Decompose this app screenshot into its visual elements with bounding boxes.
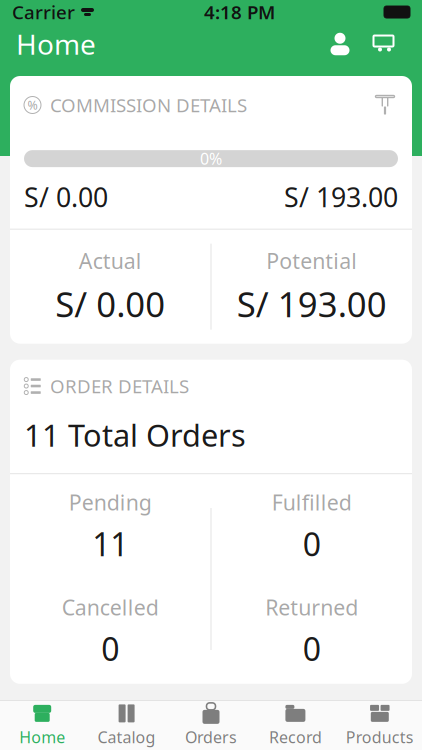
button[interactable]: Products xyxy=(338,701,422,750)
staticText: Home xyxy=(19,726,65,748)
staticText: Orders xyxy=(185,726,237,748)
staticText: Products xyxy=(346,726,414,748)
staticText: Fulfilled xyxy=(272,488,352,516)
staticText: Home xyxy=(16,25,96,63)
button[interactable]: Orders xyxy=(169,701,253,750)
staticText: % xyxy=(27,97,37,113)
button[interactable]: Record xyxy=(253,701,338,750)
staticText: 0 xyxy=(303,522,321,565)
button[interactable]: Catalog xyxy=(84,701,169,750)
staticText: 0% xyxy=(200,148,222,169)
staticText: Catalog xyxy=(98,726,156,748)
staticText: 0 xyxy=(101,627,119,670)
staticText: Cancelled xyxy=(62,593,159,621)
button[interactable]: Filter xyxy=(368,88,402,122)
staticText: S/ 193.00 xyxy=(237,281,387,327)
staticText: Potential xyxy=(266,246,357,275)
staticText: 11 Total Orders xyxy=(24,414,246,455)
staticText: S/ 0.00 xyxy=(24,179,108,215)
staticText: Record xyxy=(269,726,322,748)
staticText: S/ 193.00 xyxy=(284,179,398,215)
button[interactable]: Home xyxy=(0,701,84,750)
staticText: ORDER DETAILS xyxy=(50,374,189,398)
button[interactable]: Cart xyxy=(366,24,406,64)
button[interactable]: Account xyxy=(320,24,360,64)
staticText: 11 xyxy=(92,522,128,565)
staticText: Actual xyxy=(79,246,142,275)
staticText: 4:18 PM xyxy=(204,0,275,24)
staticText: 0 xyxy=(303,627,321,670)
staticText: COMMISSION DETAILS xyxy=(50,93,247,117)
staticText: S/ 0.00 xyxy=(55,281,165,327)
staticText: Returned xyxy=(265,593,358,621)
staticText: Carrier xyxy=(12,0,75,24)
staticText: Pending xyxy=(69,488,152,516)
